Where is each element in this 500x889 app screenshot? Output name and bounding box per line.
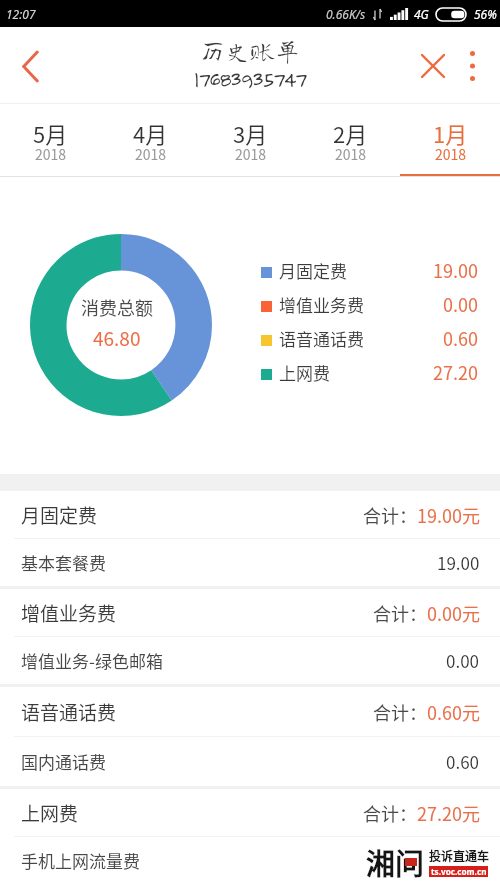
staticText: 语音通话费	[279, 326, 364, 350]
button[interactable]: 基本套餐费	[0, 539, 500, 586]
staticText: 0.66K/s	[326, 6, 366, 22]
staticText: 增值业务费	[21, 599, 117, 627]
staticText: 月固定费	[279, 258, 347, 282]
button[interactable]: 语音通话费	[0, 687, 500, 736]
staticText: 合计：	[363, 800, 417, 826]
button[interactable]: 1月	[400, 104, 500, 177]
staticText: 语音通话费	[21, 698, 117, 726]
button[interactable]: 3月	[200, 104, 300, 177]
staticText: 0.00	[443, 291, 478, 315]
staticText: 元	[462, 502, 480, 528]
staticText: 合计：	[373, 699, 427, 725]
staticText: 元	[462, 699, 480, 725]
staticText: 湘问	[366, 841, 425, 883]
staticText: 0.00	[446, 648, 480, 673]
button[interactable]: 增值业务-绿色邮箱	[0, 637, 500, 684]
staticText: 19.00	[437, 550, 480, 575]
staticText: 2018	[35, 144, 67, 164]
staticText: 手机上网流量费	[21, 848, 140, 873]
staticText: 上网费	[279, 360, 330, 384]
staticText: 增值业务-绿色邮箱	[21, 648, 163, 673]
button[interactable]: 手机上网流量费	[0, 837, 500, 883]
staticText: 合计：	[373, 600, 427, 626]
staticText: 2月	[333, 117, 368, 149]
staticText: 0.60	[446, 749, 480, 774]
staticText: 国内通话费	[21, 749, 106, 774]
staticText: 27.20	[417, 800, 462, 826]
button[interactable]: Back	[0, 36, 60, 96]
staticText: 27.20	[433, 359, 478, 383]
staticText: 历史账单	[200, 38, 301, 63]
staticText: 2018	[135, 144, 167, 164]
button[interactable]: 月固定费	[0, 491, 500, 538]
staticText: 0.00	[427, 600, 462, 626]
button[interactable]: 4月	[100, 104, 200, 177]
staticText: ts.voc.com.cn	[431, 866, 487, 877]
staticText: 0.60	[427, 699, 462, 725]
staticText: 46.80	[93, 324, 141, 352]
staticText: 56%	[474, 6, 497, 22]
staticText: 增值业务费	[279, 292, 364, 316]
button[interactable]: 国内通话费	[0, 737, 500, 786]
staticText: 2018	[235, 144, 267, 164]
staticText: 5月	[33, 117, 68, 149]
staticText: 3月	[233, 117, 268, 149]
staticText: 19.00	[417, 502, 462, 528]
button[interactable]: More options	[448, 43, 494, 89]
staticText: 17683935747	[194, 66, 306, 92]
staticText: 月固定费	[21, 501, 98, 529]
button[interactable]: 2月	[300, 104, 400, 177]
staticText: 2018	[335, 144, 367, 164]
button[interactable]: 增值业务费	[0, 589, 500, 636]
staticText: 12:07	[6, 6, 36, 22]
staticText: 投诉直通车	[429, 847, 490, 864]
staticText: 2018	[435, 144, 467, 164]
staticText: 元	[462, 600, 480, 626]
staticText: 消费总额	[81, 294, 153, 320]
button[interactable]: Close	[408, 46, 448, 86]
staticText: 上网费	[21, 799, 79, 827]
staticText: 4G	[414, 6, 429, 22]
staticText: 1月	[433, 117, 468, 149]
staticText: 4月	[133, 117, 168, 149]
button[interactable]: 上网费	[0, 789, 500, 836]
staticText: 基本套餐费	[21, 550, 106, 575]
button[interactable]: 5月	[0, 104, 100, 177]
staticText: 元	[462, 800, 480, 826]
staticText: 合计：	[363, 502, 417, 528]
staticText: 19.00	[433, 257, 478, 281]
staticText: 0.60	[443, 325, 478, 349]
